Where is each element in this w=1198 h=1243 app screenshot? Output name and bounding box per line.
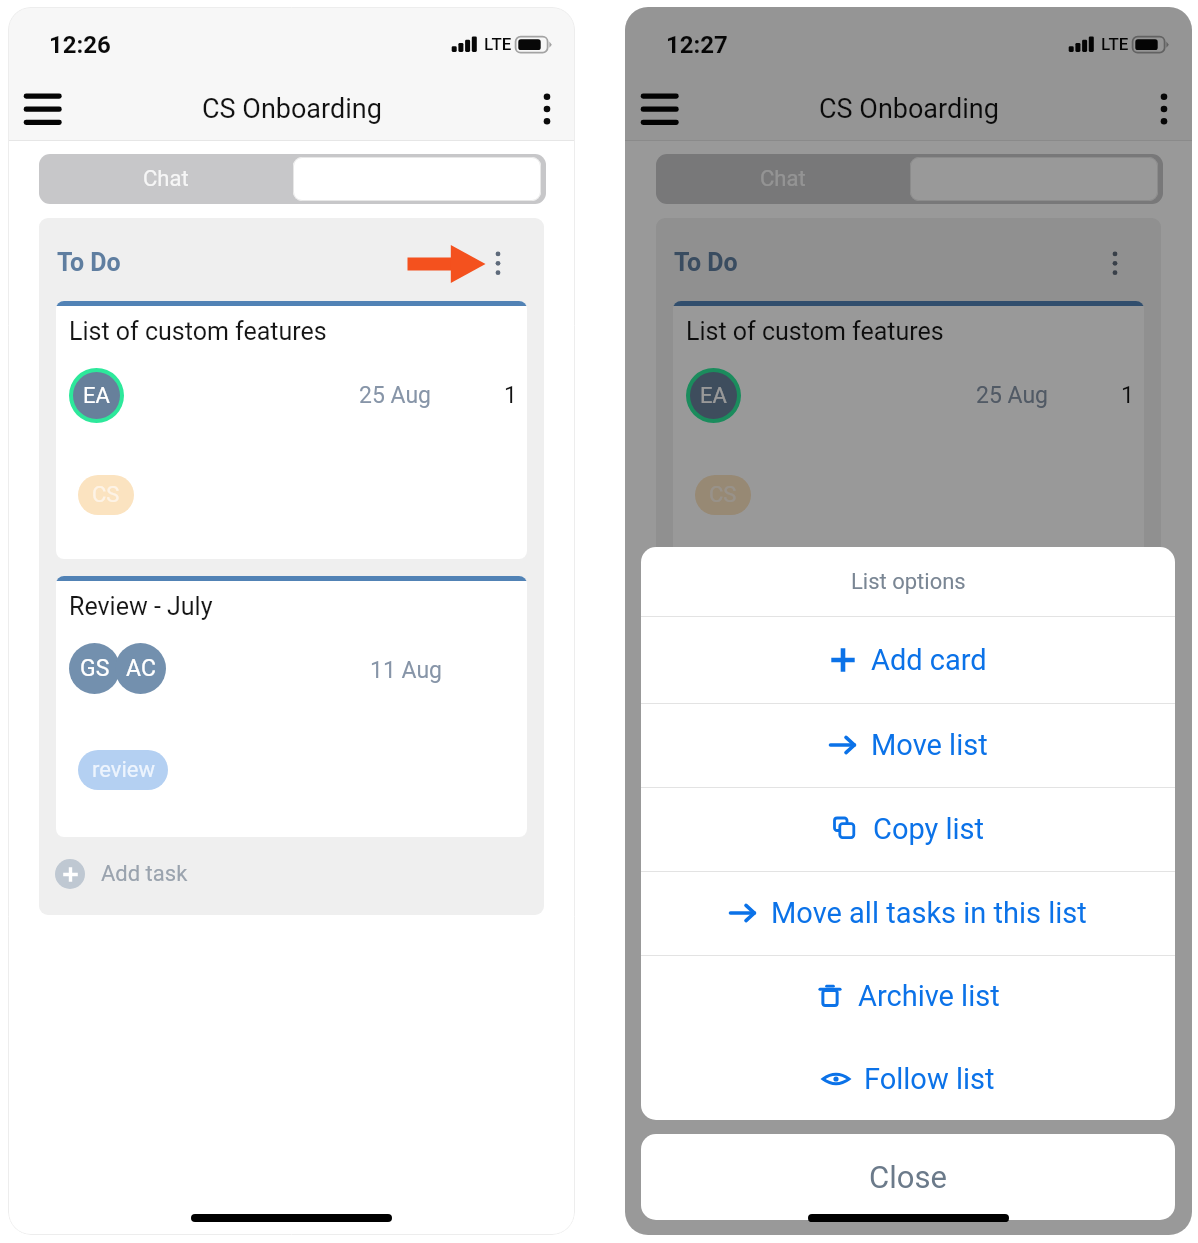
button[interactable]: Follow list (641, 1037, 1175, 1120)
button[interactable]: List options (476, 241, 520, 285)
staticText: LTE (484, 34, 512, 54)
staticText: 1 (504, 382, 517, 409)
staticText: List of custom features (686, 317, 944, 346)
staticText: To Do (674, 248, 738, 277)
staticText: To Do (57, 248, 121, 277)
staticText: Archive list (858, 979, 1000, 1013)
staticText: 25 Aug (976, 382, 1049, 409)
button[interactable]: More options (522, 84, 572, 134)
staticText: Move all tasks in this list (771, 896, 1087, 930)
button[interactable]: List of custom features (56, 301, 527, 559)
button[interactable]: List of custom features (673, 301, 1144, 559)
button[interactable]: List options (1093, 241, 1137, 285)
button[interactable]: Add card (641, 616, 1175, 703)
button[interactable] (910, 157, 1158, 201)
staticText: CS (709, 482, 737, 508)
button[interactable]: Review - July (673, 576, 1144, 837)
button[interactable]: Menu (11, 78, 73, 140)
button[interactable]: Chat (39, 154, 292, 204)
staticText: List options (851, 569, 966, 595)
staticText: Copy list (873, 812, 985, 846)
button[interactable]: Move all tasks in this list (641, 871, 1175, 955)
staticText: Follow list (864, 1062, 995, 1096)
staticText: Add task (718, 861, 805, 887)
button[interactable]: Add task (39, 837, 544, 915)
staticText: CS Onboarding (819, 93, 999, 125)
staticText: GS (80, 655, 110, 682)
staticText: List of custom features (69, 317, 327, 346)
staticText: EA (700, 383, 727, 409)
button[interactable]: Close (641, 1134, 1175, 1220)
button[interactable]: More options (1139, 84, 1189, 134)
staticText: Review - July (686, 592, 830, 621)
staticText: review (92, 757, 155, 783)
staticText: Close (869, 1159, 947, 1195)
staticText: 1 (1121, 382, 1134, 409)
staticText: Chat (760, 166, 806, 192)
staticText: 11 Aug (370, 657, 443, 684)
button[interactable] (293, 157, 541, 201)
staticText: 12:27 (666, 31, 728, 59)
staticText: CS Onboarding (202, 93, 382, 125)
button[interactable]: Add task (656, 837, 1161, 915)
staticText: Add card (871, 643, 987, 677)
button[interactable]: Copy list (641, 787, 1175, 871)
button[interactable]: Chat (656, 154, 909, 204)
staticText: Review - July (69, 592, 213, 621)
button[interactable]: Move list (641, 703, 1175, 787)
staticText: Chat (143, 166, 189, 192)
staticText: 12:26 (49, 31, 111, 59)
staticText: Add task (101, 861, 188, 887)
staticText: CS (92, 482, 120, 508)
staticText: Move list (871, 728, 988, 762)
staticText: AC (126, 655, 156, 682)
staticText: LTE (1101, 34, 1129, 54)
staticText: EA (83, 383, 110, 409)
staticText: 25 Aug (359, 382, 432, 409)
button[interactable]: Archive list (641, 955, 1175, 1037)
button[interactable]: Menu (628, 78, 690, 140)
button[interactable]: Review - July (56, 576, 527, 837)
